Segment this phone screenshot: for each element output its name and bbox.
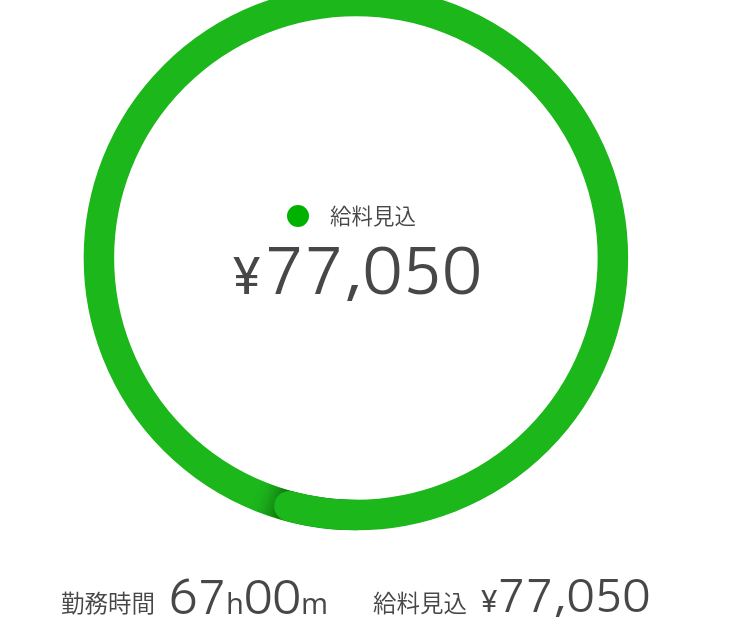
staticText: ¥77,050 [481, 564, 651, 627]
other: 給料見込 進捗リング [0, 0, 736, 638]
button[interactable]: 勤務時間 [55, 556, 309, 628]
staticText: 給料見込 [330, 199, 417, 230]
staticText: 給料見込 [373, 585, 467, 619]
button[interactable]: 給料見込 [373, 556, 637, 628]
staticText: 67h00m [169, 565, 329, 629]
button[interactable]: 給料見込 [233, 199, 493, 319]
staticText: 勤務時間 [61, 585, 155, 619]
staticText: ¥77,050 [233, 225, 482, 314]
